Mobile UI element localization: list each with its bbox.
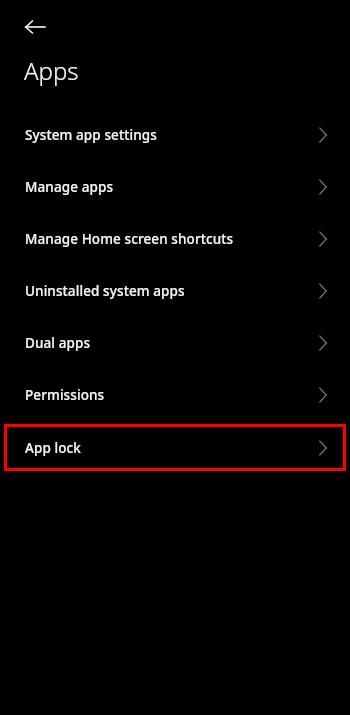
staticText: App lock [25,439,81,457]
staticText: Manage Home screen shortcuts [25,230,234,248]
staticText: System app settings [25,126,157,144]
button[interactable]: System app settings [0,109,350,161]
button[interactable]: Permissions [0,369,350,421]
staticText: Dual apps [25,334,91,352]
button[interactable]: App lock [4,424,346,471]
staticText: Manage apps [25,178,114,196]
button[interactable]: Manage Home screen shortcuts [0,213,350,265]
button[interactable]: Dual apps [0,317,350,369]
button[interactable]: Back [23,15,47,39]
staticText: Apps [24,54,79,87]
button[interactable]: Manage apps [0,161,350,213]
staticText: Uninstalled system apps [25,282,185,300]
button[interactable]: Uninstalled system apps [0,265,350,317]
staticText: Permissions [25,386,105,404]
